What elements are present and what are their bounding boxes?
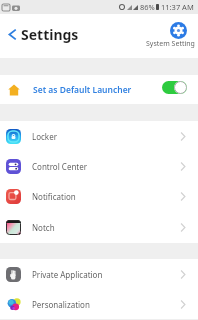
staticText: Notification	[32, 191, 76, 202]
staticText: Notch	[32, 222, 55, 233]
staticText: Set as Default Launcher	[33, 84, 132, 96]
staticText: 86%	[140, 2, 155, 12]
button[interactable]: Set as default launcher toggle	[162, 81, 187, 94]
button[interactable]: Notch	[0, 212, 198, 243]
button[interactable]: System Setting	[144, 14, 198, 58]
staticText: Personalization	[32, 299, 90, 310]
button[interactable]: Set as Default Launcher	[0, 75, 198, 104]
staticText: Control Center	[32, 161, 88, 172]
staticText: Locker	[32, 131, 57, 142]
button[interactable]: Back	[4, 26, 20, 42]
button[interactable]: Personalization	[0, 289, 198, 319]
button[interactable]: Control Center	[0, 151, 198, 181]
staticText: Settings	[21, 25, 79, 44]
button[interactable]: Notification	[0, 181, 198, 212]
staticText: 11:37 AM	[161, 2, 194, 12]
button[interactable]: Private Application	[0, 259, 198, 289]
staticText: Private Application	[32, 269, 103, 280]
button[interactable]: Locker	[0, 121, 198, 151]
staticText: System Setting	[146, 39, 195, 49]
